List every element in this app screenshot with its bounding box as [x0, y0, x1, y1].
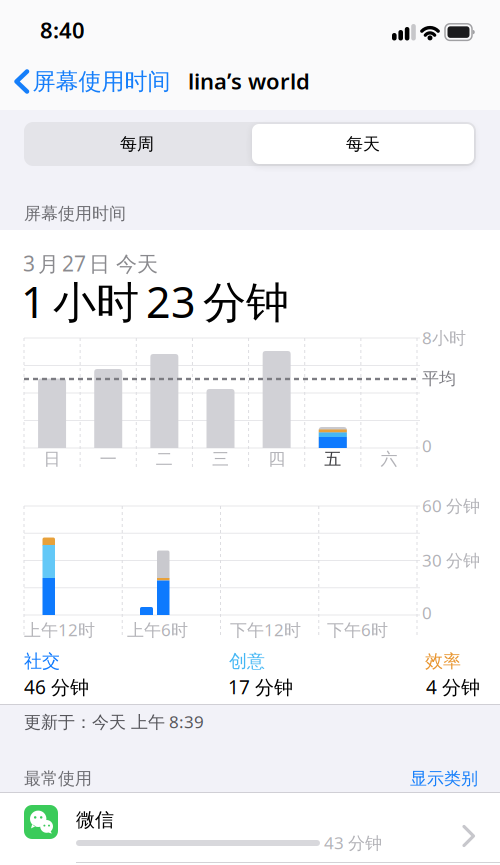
staticText: 微信 — [76, 808, 114, 832]
staticText: 显示类别 — [410, 768, 478, 789]
staticText: 0 — [422, 601, 432, 624]
staticText: 下午6时 — [327, 618, 388, 641]
staticText: 每天 — [346, 133, 380, 155]
staticText: 43 分钟 — [324, 831, 382, 854]
staticText: 平均 — [422, 368, 456, 389]
staticText: lina’s world — [188, 66, 310, 96]
staticText: 屏幕使用时间 — [32, 67, 170, 96]
staticText: 六 — [380, 448, 397, 470]
staticText: 五 — [324, 448, 341, 470]
staticText: 8:40 — [40, 15, 85, 45]
staticText: 屏幕使用时间 — [24, 203, 126, 224]
staticText: 8小时 — [422, 326, 466, 349]
button[interactable]: 显示类别 — [410, 768, 478, 789]
staticText: 创意 — [229, 650, 265, 673]
staticText: 下午12时 — [230, 618, 301, 641]
staticText: 最常使用 — [24, 768, 92, 789]
staticText: 每周 — [120, 133, 154, 155]
staticText: 更新于：今天 上午 8:39 — [24, 710, 204, 733]
staticText: 46 分钟 — [24, 674, 89, 700]
staticText: 上午6时 — [127, 618, 188, 641]
button[interactable]: 每周 — [24, 122, 250, 166]
staticText: 4 分钟 — [426, 674, 480, 700]
button[interactable]: 返回 屏幕使用时间 — [14, 67, 170, 96]
staticText: 30 分钟 — [422, 548, 480, 572]
staticText: 社交 — [24, 650, 60, 673]
staticText: 一 — [100, 448, 117, 470]
staticText: 17 分钟 — [228, 674, 293, 700]
staticText: 四 — [268, 448, 285, 470]
staticText: 60 分钟 — [422, 494, 480, 517]
staticText: 日 — [44, 448, 61, 470]
staticText: 0 — [422, 434, 432, 457]
staticText: 三 — [212, 448, 229, 470]
button[interactable]: 微信 — [0, 793, 500, 865]
staticText: 1 小时 23 分钟 — [21, 272, 289, 331]
staticText: 3 月 27 日 今天 — [23, 249, 158, 278]
staticText: 二 — [156, 448, 173, 470]
staticText: 效率 — [425, 650, 461, 673]
staticText: 上午12时 — [24, 618, 95, 641]
button[interactable]: 每天 — [250, 122, 476, 166]
